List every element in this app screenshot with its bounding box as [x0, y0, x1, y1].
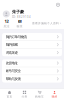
staticText: 我的: [51, 95, 57, 98]
staticText: 帮助与反馈: [5, 77, 20, 81]
button[interactable]: 48: [13, 18, 26, 28]
button[interactable]: 12: [0, 18, 13, 28]
button[interactable]: 账号与安全: [2, 67, 62, 75]
staticText: 收货地址: [5, 61, 17, 65]
staticText: 账号与安全: [5, 69, 20, 73]
button[interactable]: Settings: [55, 2, 64, 7]
button[interactable]: 浏览足迹: [2, 49, 62, 56]
staticText: 购物车: [35, 95, 44, 98]
staticText: 12: [4, 18, 8, 24]
button[interactable]: 我的: [47, 89, 62, 100]
staticText: 朱子豪: [12, 9, 24, 14]
button[interactable]: 帮助与反馈: [2, 75, 62, 83]
staticText: 分类: [21, 95, 27, 98]
staticText: 我的收藏: [5, 42, 17, 47]
staticText: 关注: [3, 24, 9, 28]
staticText: 查看并编辑个人资料 ›: [32, 21, 61, 25]
button[interactable]: 我的订单与物流: [2, 33, 62, 40]
staticText: 我的订单与物流: [5, 35, 26, 39]
staticText: 粉丝: [16, 24, 22, 28]
staticText: 浏览足迹: [5, 50, 17, 55]
button[interactable]: 收货地址: [2, 59, 62, 67]
staticText: ID: 8829104: [12, 15, 31, 19]
button[interactable]: 购物车: [32, 89, 47, 100]
button[interactable]: 查看并编辑个人资料 ›: [32, 21, 64, 25]
button[interactable]: 分类: [17, 89, 32, 100]
staticText: 48: [17, 18, 21, 24]
button[interactable]: 首页: [2, 89, 17, 100]
button[interactable]: 我的收藏: [2, 41, 62, 48]
staticText: 首页: [6, 95, 12, 98]
